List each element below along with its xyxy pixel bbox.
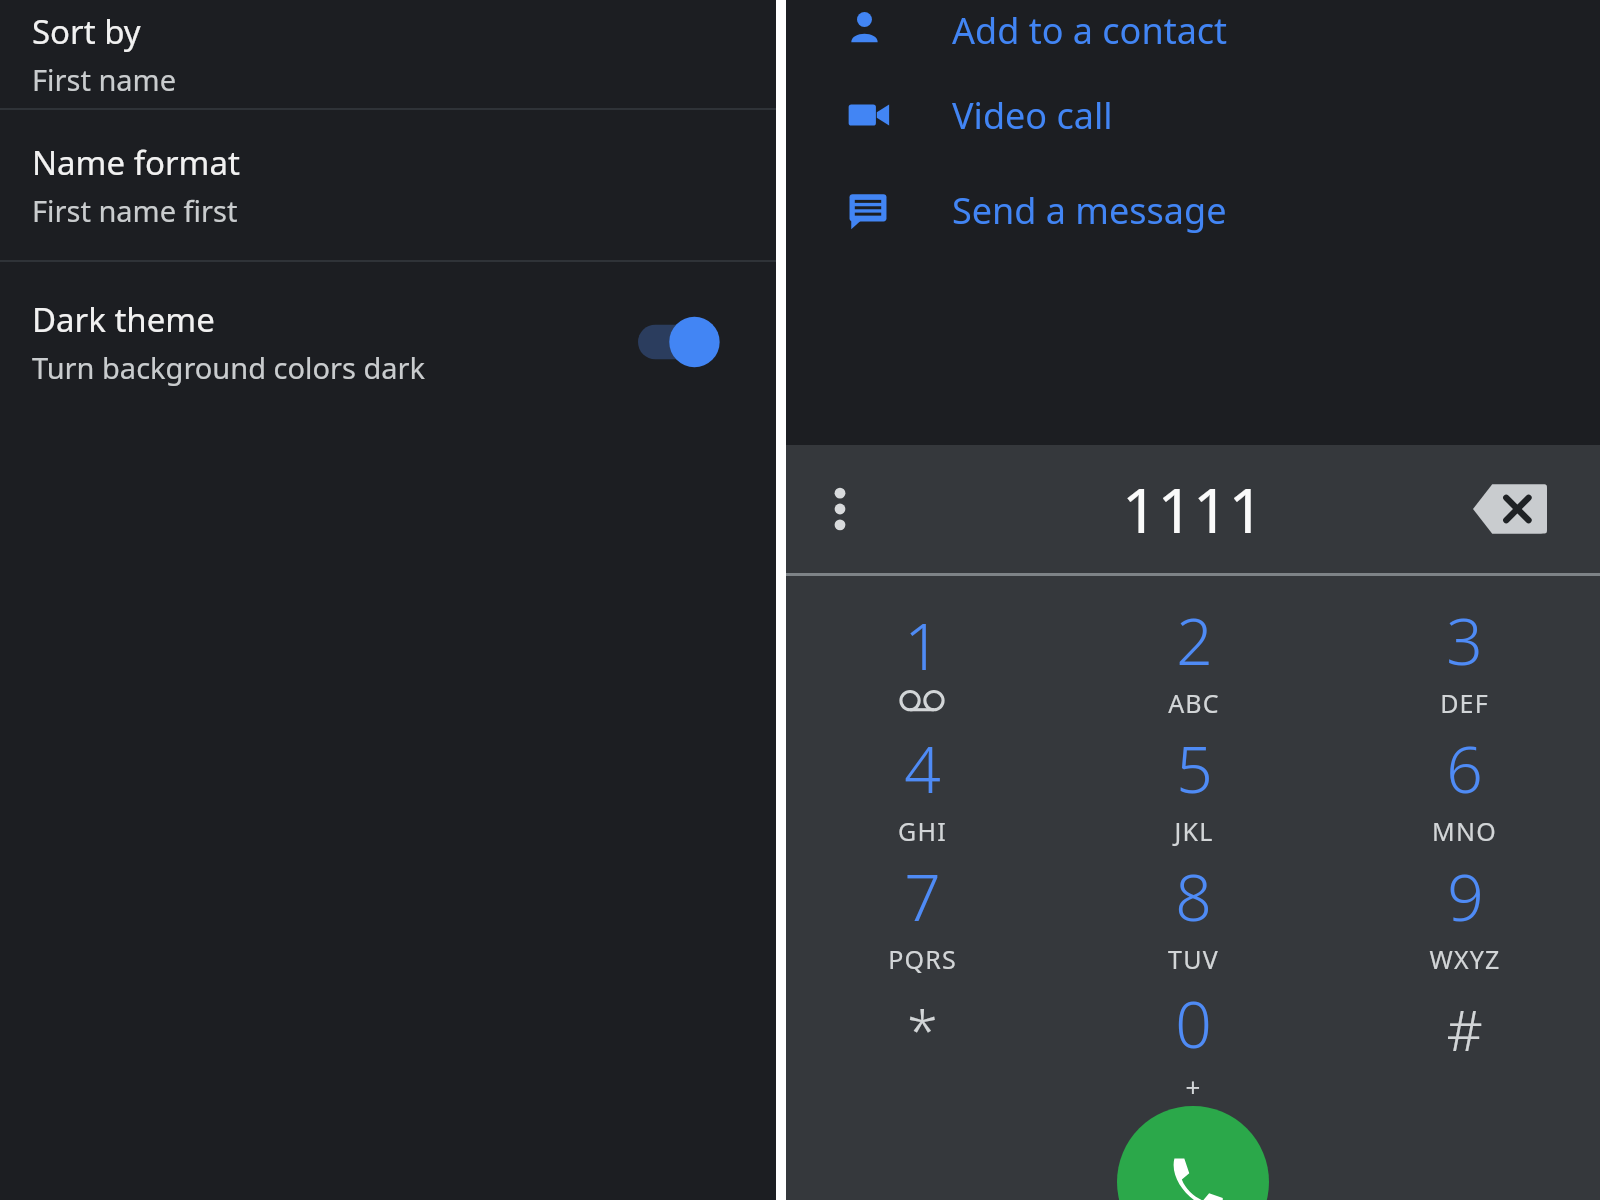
staticText: TUV bbox=[1168, 942, 1219, 976]
button[interactable]: 9 bbox=[1329, 850, 1600, 978]
staticText: Video call bbox=[952, 91, 1113, 140]
button[interactable]: 8 bbox=[1058, 850, 1329, 978]
staticText: JKL bbox=[1174, 814, 1214, 848]
staticText: # bbox=[1446, 991, 1483, 1067]
staticText: 4 bbox=[904, 725, 941, 812]
button[interactable]: Call bbox=[1117, 1106, 1269, 1200]
staticText: 3 bbox=[1446, 597, 1483, 684]
button[interactable]: 5 bbox=[1058, 722, 1329, 850]
button[interactable]: Send a message bbox=[786, 162, 1600, 258]
staticText: 8 bbox=[1175, 853, 1212, 940]
staticText: * bbox=[907, 991, 938, 1067]
button[interactable]: 7 bbox=[786, 850, 1058, 978]
staticText: MNO bbox=[1432, 814, 1497, 848]
staticText: Name format bbox=[32, 140, 240, 185]
button[interactable]: Add to a contact bbox=[786, 0, 1600, 78]
button[interactable]: 4 bbox=[786, 722, 1058, 850]
button[interactable]: Sort by bbox=[0, 0, 776, 108]
button[interactable]: 3 bbox=[1329, 594, 1600, 722]
staticText: + bbox=[1185, 1069, 1202, 1104]
staticText: 2 bbox=[1176, 597, 1213, 684]
staticText: 6 bbox=[1446, 725, 1483, 812]
button[interactable]: 6 bbox=[1329, 722, 1600, 850]
button[interactable]: Backspace bbox=[1468, 472, 1552, 546]
staticText: 1 bbox=[904, 602, 941, 689]
staticText: 1111 bbox=[1122, 467, 1264, 551]
button[interactable]: Name format bbox=[0, 110, 776, 260]
button[interactable]: * bbox=[786, 978, 1058, 1106]
staticText: 7 bbox=[904, 853, 941, 940]
staticText: ABC bbox=[1168, 686, 1220, 720]
staticText: DEF bbox=[1440, 686, 1489, 720]
button[interactable]: 2 bbox=[1058, 594, 1329, 722]
button[interactable]: Dark theme toggle bbox=[638, 314, 734, 370]
button[interactable]: 0 bbox=[1058, 978, 1329, 1106]
button[interactable]: More options bbox=[812, 472, 868, 546]
staticText: 9 bbox=[1447, 853, 1484, 940]
staticText: Dark theme bbox=[32, 297, 215, 342]
button[interactable]: Dark theme bbox=[0, 262, 776, 422]
button[interactable]: Video call bbox=[786, 67, 1600, 163]
staticText: First name bbox=[32, 60, 177, 99]
button[interactable]: # bbox=[1329, 978, 1600, 1106]
staticText: Send a message bbox=[952, 186, 1227, 235]
staticText: Add to a contact bbox=[952, 6, 1228, 55]
staticText: 0 bbox=[1175, 980, 1212, 1067]
staticText: PQRS bbox=[888, 942, 957, 976]
staticText: WXYZ bbox=[1429, 942, 1501, 976]
staticText: Sort by bbox=[32, 9, 141, 54]
button[interactable]: 1 bbox=[786, 594, 1058, 722]
staticText: First name first bbox=[32, 191, 238, 230]
staticText: GHI bbox=[898, 814, 947, 848]
staticText: Turn background colors dark bbox=[32, 348, 426, 387]
staticText: 5 bbox=[1176, 725, 1213, 812]
